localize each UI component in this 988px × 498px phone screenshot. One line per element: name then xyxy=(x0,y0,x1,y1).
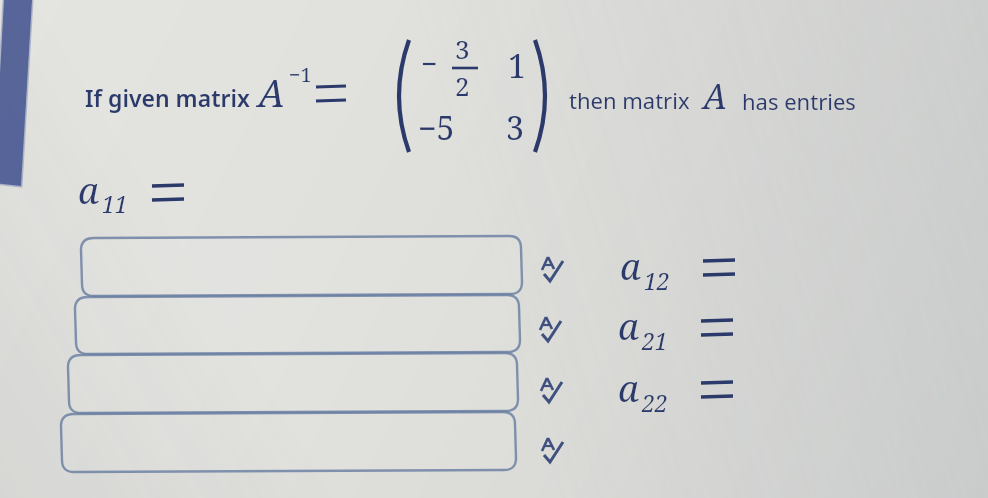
button[interactable]: Answer field 4 xyxy=(62,412,515,470)
button[interactable]: Answer field 1 xyxy=(82,236,521,294)
button[interactable]: Spell check xyxy=(540,430,576,464)
button[interactable]: Spell check xyxy=(541,250,577,284)
button[interactable]: Spell check xyxy=(539,371,575,405)
button[interactable]: Answer field 2 xyxy=(76,295,519,353)
button[interactable]: Spell check xyxy=(538,310,574,344)
button[interactable]: Answer field 3 xyxy=(69,353,517,411)
